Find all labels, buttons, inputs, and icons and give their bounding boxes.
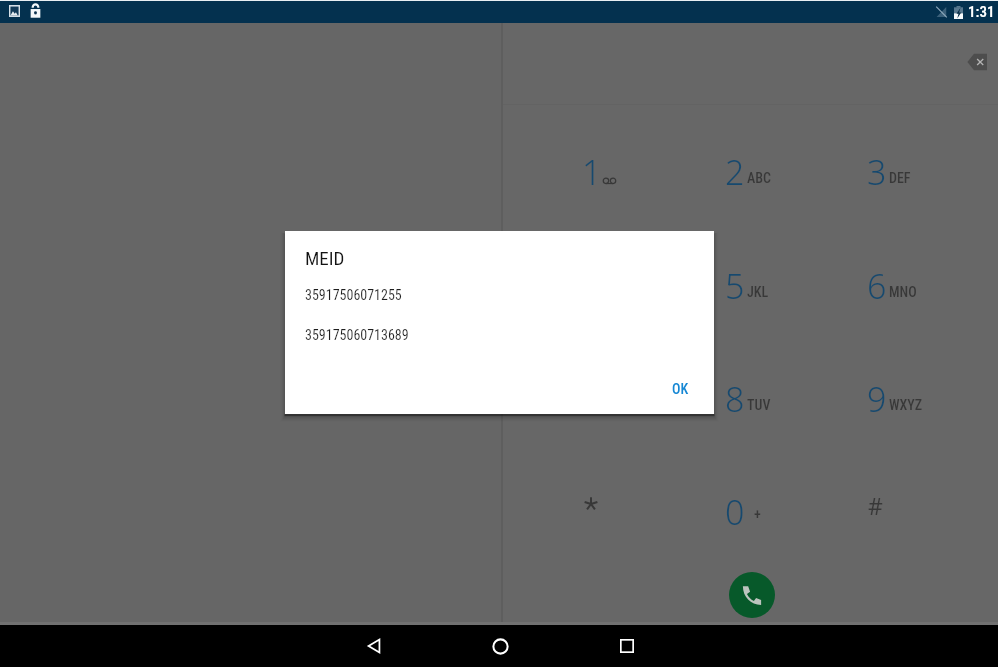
staticText: 1:31 <box>968 3 995 21</box>
button[interactable]: Home <box>476 625 524 667</box>
button[interactable]: Backspace <box>956 41 998 83</box>
staticText: 5 <box>725 263 745 309</box>
staticText: + <box>754 506 761 522</box>
button[interactable]: 1 <box>528 104 670 217</box>
staticText: 6 <box>867 263 887 309</box>
button[interactable]: 5 <box>671 218 813 331</box>
button[interactable]: 2 <box>671 104 813 217</box>
staticText: 9 <box>867 376 887 422</box>
button[interactable]: OK <box>656 374 704 404</box>
staticText: MNO <box>889 284 917 300</box>
staticText: OK <box>672 381 689 397</box>
staticText: 3 <box>867 149 887 195</box>
staticText: MEID <box>305 247 345 269</box>
button[interactable]: Recent apps <box>603 625 651 667</box>
button[interactable]: 6 <box>813 218 955 331</box>
button[interactable]: 4 <box>528 218 670 331</box>
staticText: 8 <box>725 376 745 422</box>
button[interactable]: 7 <box>528 331 670 444</box>
button[interactable]: 9 <box>813 331 955 444</box>
staticText: ABC <box>747 170 772 186</box>
staticText: DEF <box>889 170 911 186</box>
button[interactable]: Back <box>350 625 398 667</box>
staticText: 35917506071255 <box>305 287 402 303</box>
staticText: 1 <box>582 149 602 195</box>
staticText: WXYZ <box>889 397 923 413</box>
staticText: 7 <box>582 376 602 422</box>
staticText: TUV <box>747 397 771 413</box>
button[interactable]: Call <box>729 572 775 618</box>
staticText: 2 <box>725 149 745 195</box>
staticText: # <box>868 490 883 521</box>
staticText: 0 <box>725 489 745 535</box>
button[interactable]: 3 <box>813 104 955 217</box>
button[interactable]: 8 <box>671 331 813 444</box>
button[interactable]: 0 <box>671 444 813 557</box>
staticText: JKL <box>747 284 769 300</box>
staticText: 359175060713689 <box>305 327 409 343</box>
